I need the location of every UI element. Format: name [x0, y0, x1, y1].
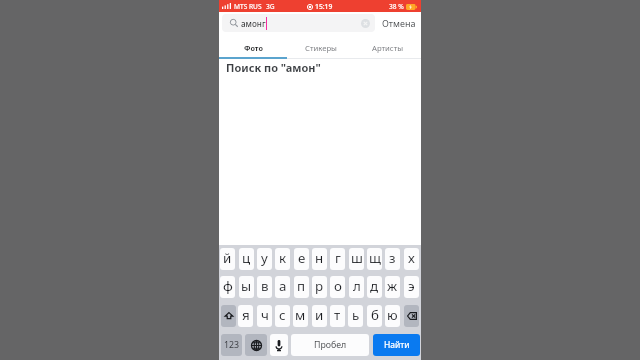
staticText: я: [242, 306, 250, 324]
staticText: ы: [241, 277, 252, 295]
staticText: с: [279, 306, 286, 324]
staticText: д: [370, 277, 379, 295]
staticText: Артисты: [372, 43, 404, 53]
button[interactable]: и: [312, 305, 327, 327]
button[interactable]: р: [312, 276, 327, 298]
staticText: н: [315, 249, 324, 267]
button[interactable]: у: [257, 248, 272, 270]
staticText: х: [408, 249, 415, 267]
button[interactable]: о: [330, 276, 345, 298]
staticText: а: [279, 277, 287, 295]
staticText: щ: [369, 249, 381, 267]
button[interactable]: Отмена: [382, 17, 416, 29]
staticText: Пробел: [314, 339, 347, 351]
staticText: ш: [351, 249, 363, 267]
staticText: 123: [224, 339, 240, 351]
button[interactable]: Стикеры: [287, 33, 354, 58]
button[interactable]: ц: [239, 248, 254, 270]
button[interactable]: в: [257, 276, 272, 298]
staticText: з: [389, 249, 396, 267]
staticText: б: [371, 306, 379, 324]
staticText: м: [295, 306, 306, 324]
staticText: и: [315, 306, 324, 324]
staticText: ю: [387, 306, 398, 324]
button[interactable]: Найти: [373, 334, 420, 356]
button[interactable]: Фото: [219, 33, 287, 58]
staticText: о: [334, 277, 342, 295]
button[interactable]: я: [238, 305, 253, 327]
button[interactable]: ж: [385, 276, 400, 298]
staticText: р: [315, 277, 324, 295]
staticText: п: [297, 277, 306, 295]
staticText: у: [261, 249, 268, 267]
button[interactable]: ч: [257, 305, 272, 327]
button[interactable]: 123: [221, 334, 242, 356]
staticText: в: [261, 277, 269, 295]
button[interactable]: б: [367, 305, 382, 327]
button[interactable]: й: [220, 248, 235, 270]
button[interactable]: п: [294, 276, 309, 298]
button[interactable]: Артисты: [354, 33, 421, 58]
button[interactable]: х: [404, 248, 419, 270]
button[interactable]: э: [404, 276, 419, 298]
button[interactable]: Switch keyboard language: [245, 334, 267, 356]
staticText: 15:19: [315, 2, 333, 11]
button[interactable]: м: [293, 305, 308, 327]
staticText: Стикеры: [305, 43, 337, 53]
button[interactable]: д: [367, 276, 382, 298]
button[interactable]: Clear text: [360, 18, 370, 28]
staticText: г: [335, 249, 341, 267]
button[interactable]: л: [349, 276, 364, 298]
staticText: ф: [223, 277, 233, 295]
button[interactable]: ы: [239, 276, 254, 298]
button[interactable]: н: [312, 248, 327, 270]
staticText: амонг: [241, 18, 266, 29]
button[interactable]: амонг: [222, 14, 375, 32]
button[interactable]: з: [385, 248, 400, 270]
staticText: ь: [352, 306, 360, 324]
button[interactable]: ш: [349, 248, 364, 270]
staticText: MTS RUS: [234, 2, 262, 11]
staticText: ч: [261, 306, 269, 324]
staticText: т: [334, 306, 341, 324]
staticText: Поиск по "амон": [226, 60, 321, 75]
staticText: Найти: [384, 339, 410, 351]
button[interactable]: ь: [348, 305, 363, 327]
button[interactable]: с: [275, 305, 290, 327]
button[interactable]: г: [330, 248, 345, 270]
button[interactable]: Пробел: [291, 334, 369, 356]
staticText: й: [223, 249, 232, 267]
staticText: к: [279, 249, 287, 267]
button[interactable]: е: [294, 248, 309, 270]
button[interactable]: щ: [367, 248, 382, 270]
button[interactable]: Dictation: [270, 334, 288, 356]
staticText: ж: [387, 277, 398, 295]
button[interactable]: Backspace: [404, 305, 419, 327]
staticText: Фото: [244, 43, 263, 53]
staticText: е: [298, 249, 306, 267]
button[interactable]: ю: [385, 305, 400, 327]
button[interactable]: т: [330, 305, 345, 327]
staticText: л: [353, 277, 361, 295]
button[interactable]: Shift: [221, 305, 236, 327]
staticText: Отмена: [382, 17, 416, 29]
button[interactable]: а: [275, 276, 290, 298]
staticText: 3G: [266, 2, 275, 11]
staticText: ц: [242, 249, 251, 267]
staticText: 38 %: [389, 2, 404, 11]
button[interactable]: к: [275, 248, 290, 270]
staticText: э: [408, 277, 415, 295]
button[interactable]: ф: [220, 276, 235, 298]
